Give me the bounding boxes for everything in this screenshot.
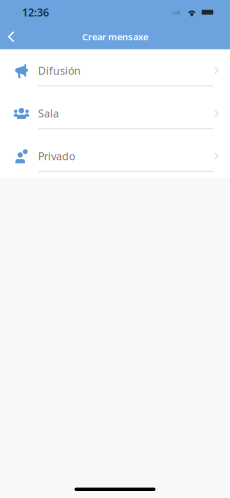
button[interactable]: Privado <box>0 135 230 178</box>
staticText: Crear mensaxe <box>82 31 148 43</box>
button[interactable]: Sala <box>0 92 230 135</box>
staticText: 12:36 <box>22 5 49 19</box>
staticText: Sala <box>38 106 59 120</box>
button[interactable]: Difusión <box>0 49 230 92</box>
button[interactable]: Back <box>0 25 22 49</box>
staticText: Privado <box>38 149 75 163</box>
staticText: Difusión <box>38 63 81 78</box>
